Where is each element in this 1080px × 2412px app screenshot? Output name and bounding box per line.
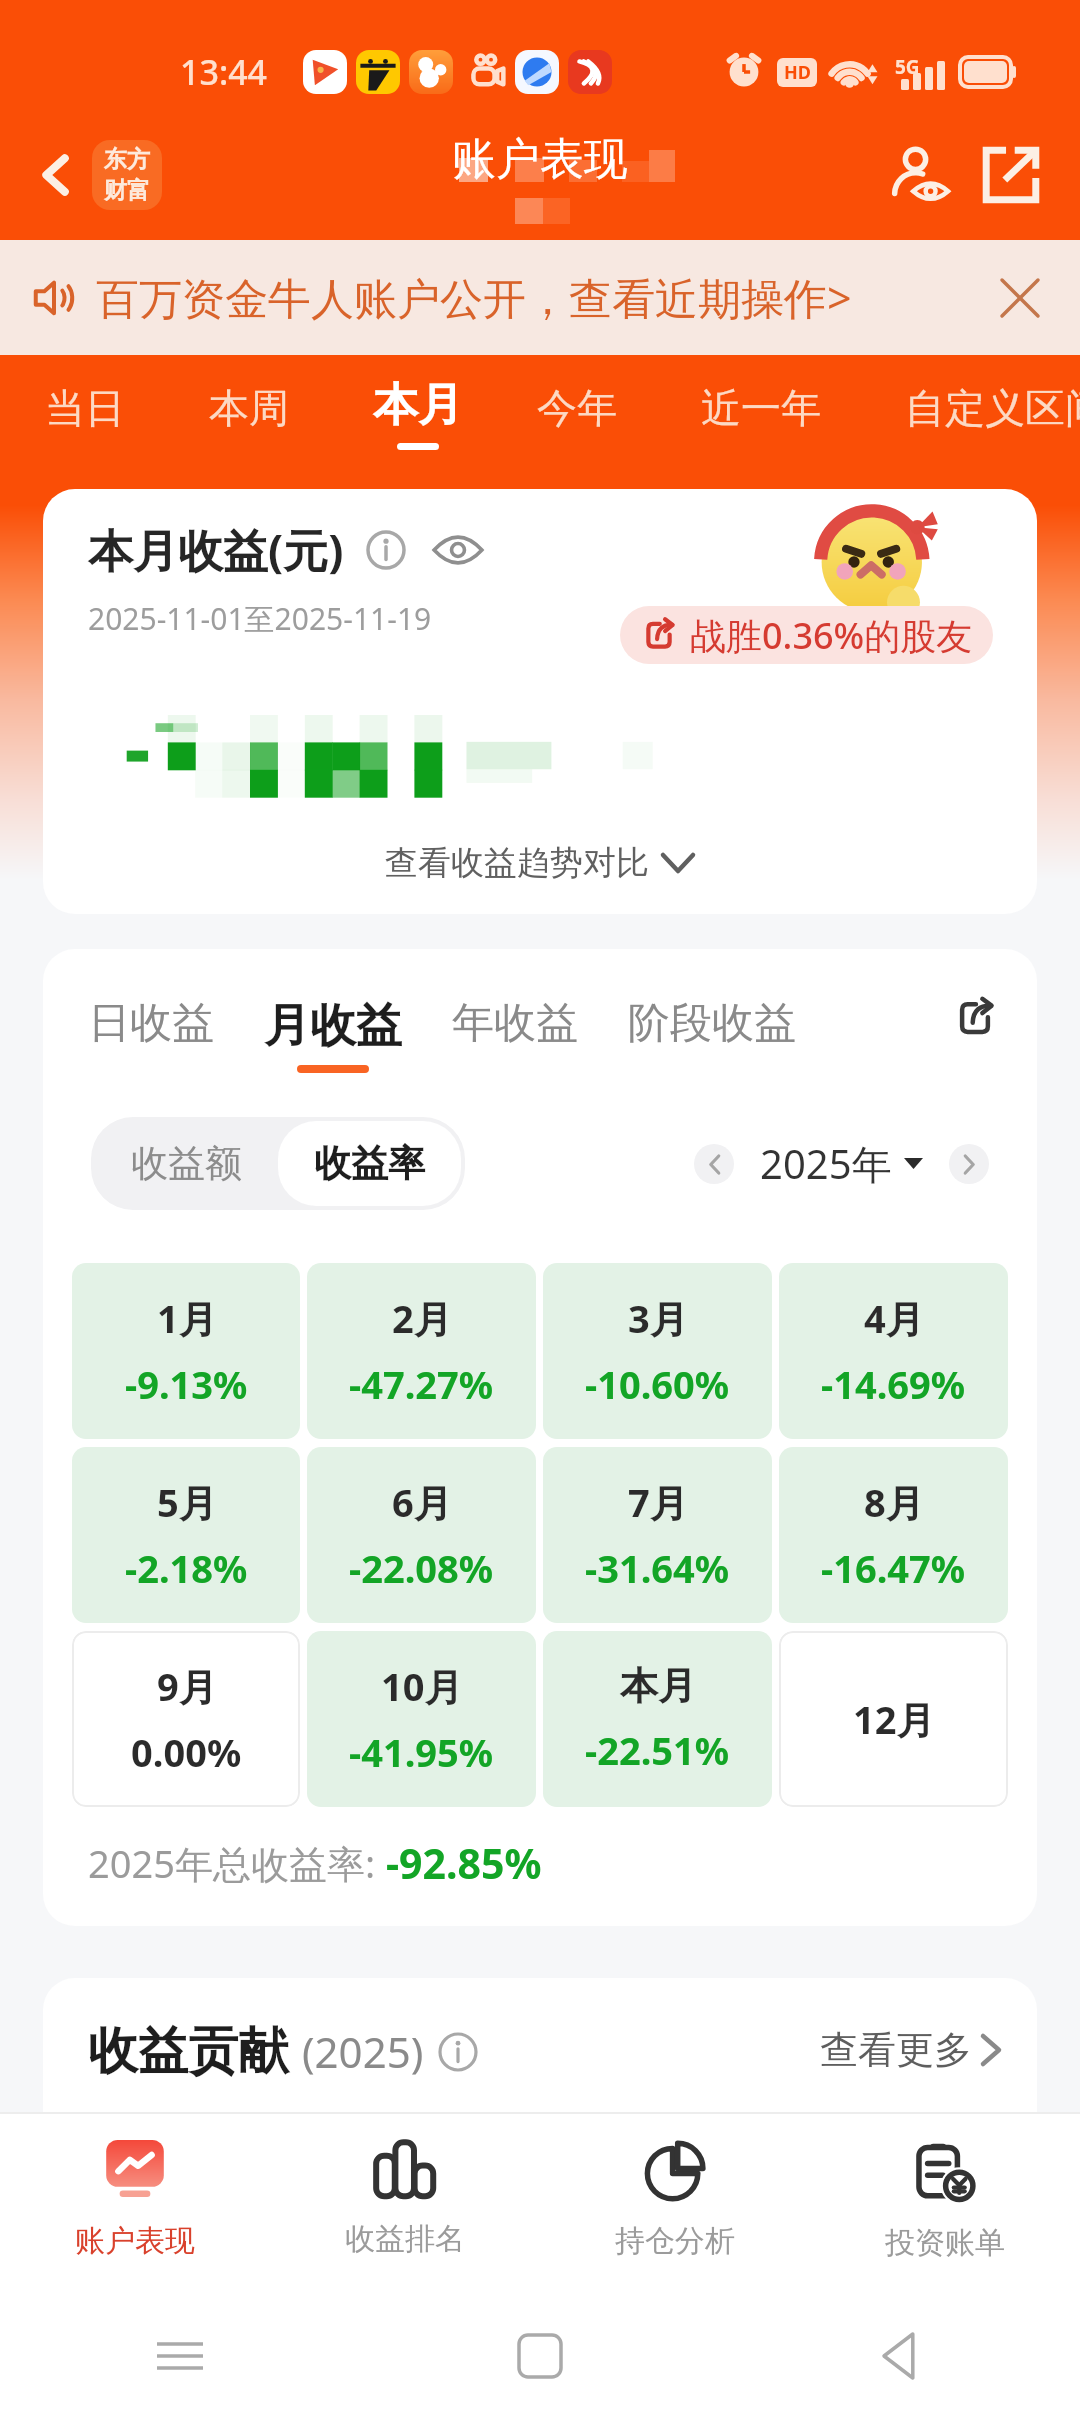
staticText: -41.95% [349, 1726, 494, 1778]
button[interactable]: 近一年 [701, 355, 905, 433]
button[interactable]: 6月 [307, 1447, 536, 1623]
button[interactable]: 2025年 [760, 1136, 923, 1191]
staticText: 6月 [392, 1476, 452, 1528]
button[interactable]: Open external [972, 136, 1050, 214]
button[interactable]: 12月 [779, 1631, 1008, 1807]
staticText: 12月 [853, 1693, 935, 1745]
staticText: -9.13% [125, 1358, 248, 1410]
button[interactable]: 年收益 [452, 997, 628, 1050]
staticText: HD [784, 60, 811, 85]
button[interactable]: 当日 [45, 355, 209, 433]
staticText: -22.08% [349, 1542, 494, 1594]
button[interactable]: 投资账单 [810, 2114, 1080, 2300]
staticText: 0.00% [131, 1726, 242, 1778]
staticText: 账户表现 [75, 2222, 195, 2260]
staticText: 本月 [620, 1662, 696, 1710]
button[interactable]: 本月 [373, 355, 537, 450]
button[interactable]: Next year [949, 1144, 989, 1184]
button[interactable]: 9月 [72, 1631, 300, 1807]
button[interactable]: 2月 [307, 1263, 536, 1439]
button[interactable]: Close [988, 266, 1052, 330]
button[interactable]: 自定义区间 [905, 355, 1080, 433]
button[interactable]: 3月 [543, 1263, 772, 1439]
staticText: 月收益 [264, 997, 402, 1055]
staticText: 投资账单 [885, 2224, 1005, 2262]
staticText: 账户表现 [452, 132, 628, 187]
button[interactable]: 查看更多 [820, 2026, 1002, 2074]
staticText: 收益排名 [345, 2220, 465, 2258]
staticText: 2025年 [760, 1136, 892, 1191]
staticText: 5月 [157, 1476, 217, 1528]
staticText: 5G [895, 54, 920, 80]
staticText: -31.64% [585, 1542, 730, 1594]
staticText: 查看更多 [820, 2026, 972, 2074]
staticText: 收益贡献 [88, 2020, 288, 2083]
staticText: 收益率 [314, 1140, 425, 1187]
button[interactable]: Previous year [694, 1144, 734, 1184]
staticText: 本周 [209, 383, 289, 433]
button[interactable]: Back [22, 141, 90, 209]
staticText: 2月 [392, 1292, 452, 1344]
staticText: -2.18% [125, 1542, 248, 1594]
button[interactable]: 账户表现 [0, 2114, 270, 2300]
button[interactable]: 战胜0.36%的股友 [620, 606, 993, 664]
staticText: 本月 [373, 377, 463, 434]
button[interactable]: 收益排名 [270, 2114, 540, 2300]
button[interactable]: 持仓分析 [540, 2114, 810, 2300]
button[interactable]: Account visibility [880, 136, 958, 214]
button[interactable]: 1月 [72, 1263, 300, 1439]
staticText: -14.69% [821, 1358, 966, 1410]
staticText: -47.27% [349, 1358, 494, 1410]
button[interactable]: 5月 [72, 1447, 300, 1623]
button[interactable]: Share [945, 989, 1005, 1049]
staticText: (2025) [302, 2023, 424, 2080]
button[interactable]: Info [366, 530, 406, 570]
staticText: 10月 [381, 1660, 463, 1712]
staticText: 东方 [104, 145, 150, 174]
staticText: 2025-11-01至2025-11-19 [88, 598, 432, 639]
button[interactable]: 收益率 [278, 1121, 461, 1206]
staticText: 自定义区间 [905, 383, 1080, 433]
button[interactable]: 百万资金牛人账户公开，查看近期操作> [0, 240, 1080, 355]
button[interactable]: 今年 [537, 355, 701, 433]
staticText: 阶段收益 [628, 997, 796, 1050]
staticText: 近一年 [701, 383, 821, 433]
staticText: 2025年总收益率: [88, 1837, 386, 1889]
staticText: 年收益 [452, 997, 578, 1050]
staticText: 查看收益趋势对比 [385, 842, 649, 884]
staticText: 8月 [864, 1476, 924, 1528]
staticText: 3月 [628, 1292, 688, 1344]
staticText: 4月 [864, 1292, 924, 1344]
staticText: 持仓分析 [615, 2222, 735, 2260]
button[interactable]: 查看收益趋势对比 [385, 842, 695, 884]
staticText: -16.47% [821, 1542, 966, 1594]
staticText: 财富 [104, 176, 150, 205]
staticText: -22.51% [585, 1724, 730, 1776]
button[interactable]: Toggle visibility [432, 531, 484, 569]
staticText: 战胜0.36%的股友 [690, 611, 973, 660]
staticText: 本月收益(元) [88, 519, 344, 580]
staticText: 日收益 [88, 997, 214, 1050]
staticText: 1月 [157, 1292, 217, 1344]
staticText: 收益额 [131, 1140, 242, 1187]
staticText: 今年 [537, 383, 617, 433]
staticText: 当日 [45, 383, 125, 433]
staticText: 9月 [157, 1660, 217, 1712]
button[interactable]: 收益额 [95, 1121, 278, 1206]
staticText: 百万资金牛人账户公开，查看近期操作> [96, 268, 852, 327]
button[interactable]: 10月 [307, 1631, 536, 1807]
staticText: 13:44 [180, 49, 268, 95]
button[interactable]: 本月 [543, 1631, 772, 1807]
button[interactable]: 4月 [779, 1263, 1008, 1439]
staticText: -92.85% [386, 1835, 542, 1891]
staticText: -10.60% [585, 1358, 730, 1410]
button[interactable]: 8月 [779, 1447, 1008, 1623]
staticText: 7月 [628, 1476, 688, 1528]
button[interactable]: 日收益 [88, 997, 264, 1050]
button[interactable]: 阶段收益 [628, 997, 846, 1050]
button[interactable]: 东方 [92, 140, 162, 210]
button[interactable]: 本周 [209, 355, 373, 433]
button[interactable]: 7月 [543, 1447, 772, 1623]
button[interactable]: 月收益 [264, 997, 452, 1073]
